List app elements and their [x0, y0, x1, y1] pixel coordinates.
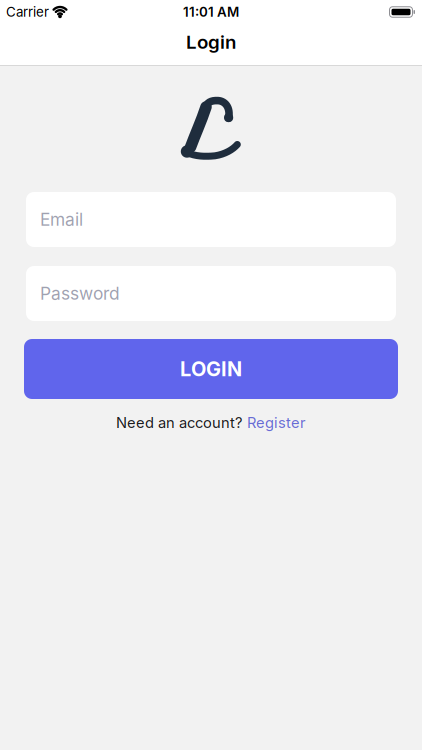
staticText: Need an account?	[116, 414, 242, 431]
staticText: Login	[186, 31, 236, 53]
staticText: 11:01 AM	[183, 4, 239, 20]
button[interactable]: Register	[247, 414, 306, 431]
button[interactable]: LOGIN	[24, 339, 398, 399]
staticText: Register	[247, 414, 306, 431]
staticText: LOGIN	[180, 357, 242, 381]
staticText: Email	[40, 209, 83, 230]
staticText: Password	[40, 283, 120, 304]
staticText: Carrier	[6, 4, 49, 20]
